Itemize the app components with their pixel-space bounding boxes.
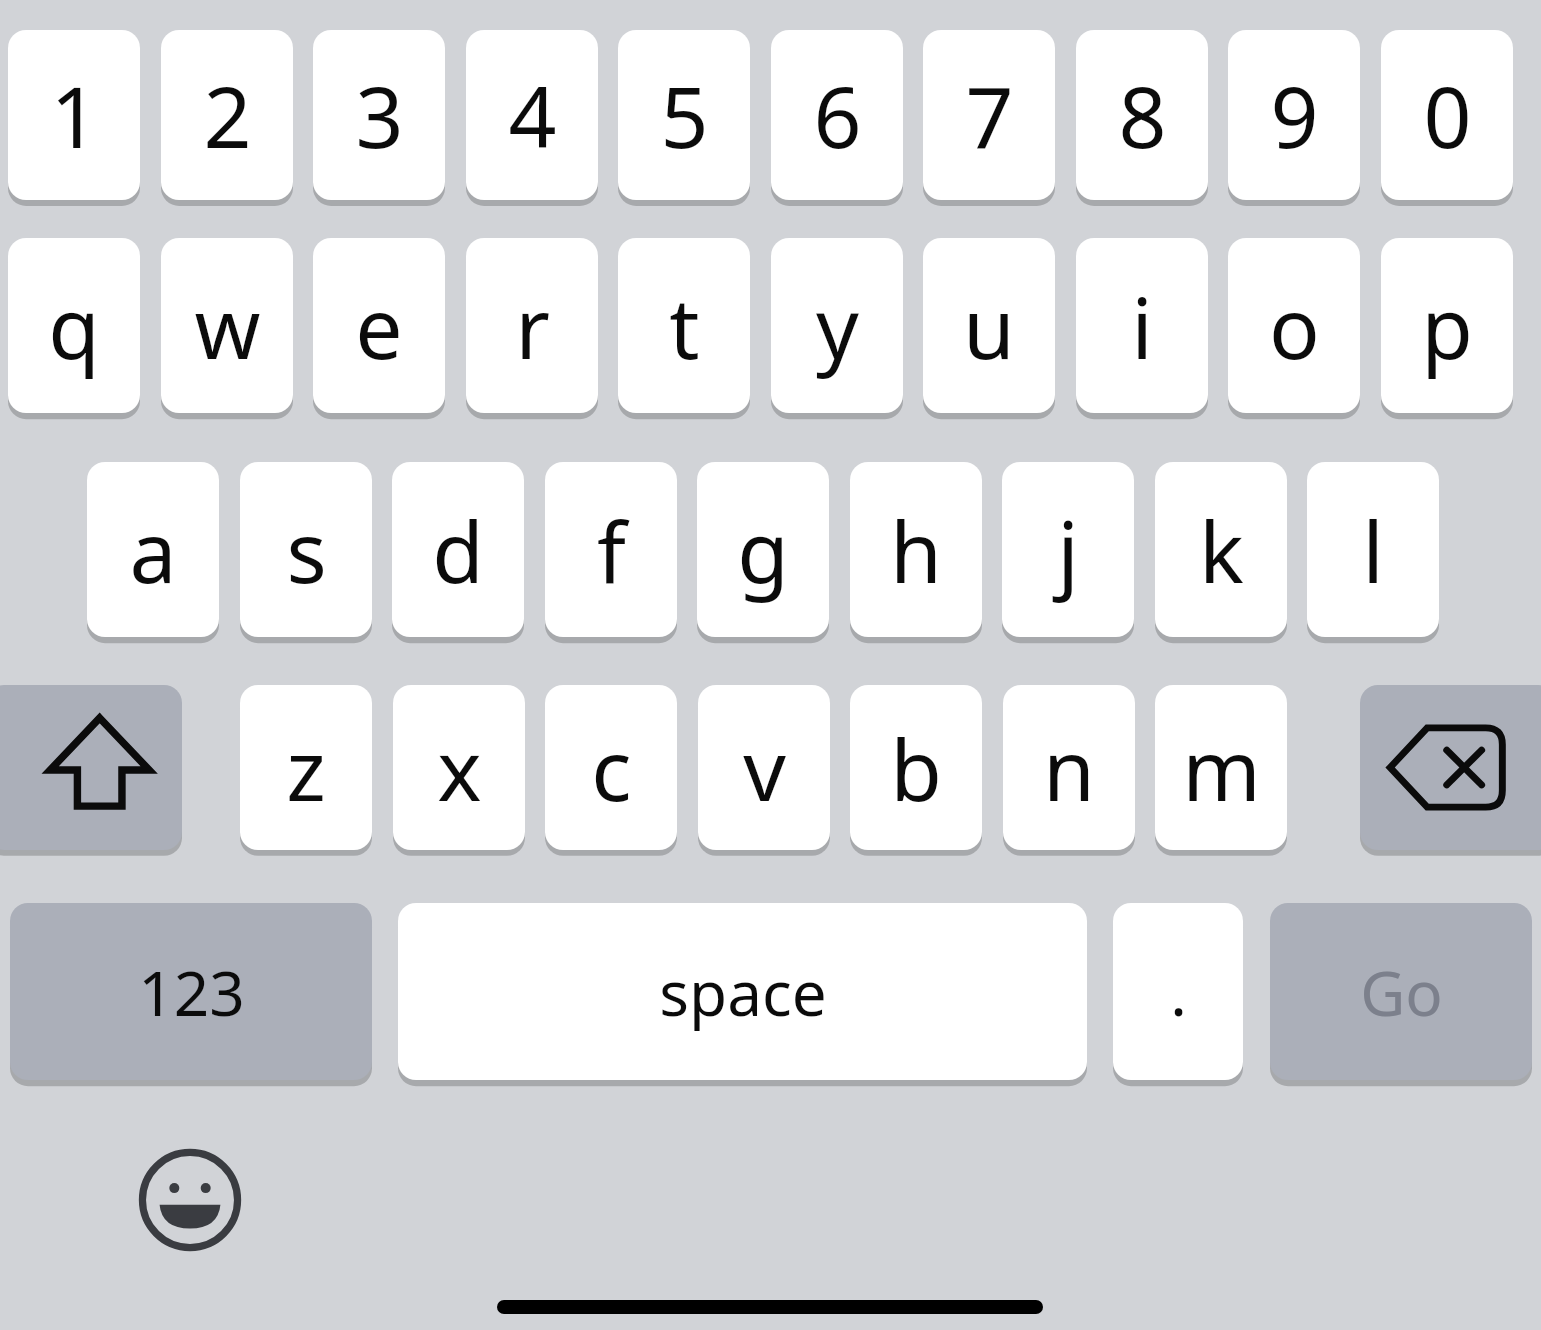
staticText: m bbox=[1182, 711, 1261, 825]
staticText: u bbox=[963, 269, 1015, 383]
button[interactable]: 4 bbox=[466, 30, 598, 200]
staticText: p bbox=[1421, 269, 1473, 383]
button[interactable]: . bbox=[1113, 903, 1243, 1080]
staticText: t bbox=[669, 269, 700, 383]
button[interactable]: 6 bbox=[771, 30, 903, 200]
button[interactable]: Go bbox=[1270, 903, 1532, 1080]
button[interactable]: p bbox=[1381, 238, 1513, 413]
button[interactable]: Emoji keyboard bbox=[132, 1142, 248, 1258]
button[interactable]: y bbox=[771, 238, 903, 413]
staticText: o bbox=[1269, 269, 1320, 383]
button[interactable]: a bbox=[87, 462, 219, 637]
staticText: y bbox=[816, 269, 859, 383]
button[interactable]: 1 bbox=[8, 30, 140, 200]
button[interactable]: q bbox=[8, 238, 140, 413]
button[interactable]: u bbox=[923, 238, 1055, 413]
staticText: . bbox=[1170, 950, 1187, 1034]
staticText: d bbox=[432, 493, 484, 607]
button[interactable]: w bbox=[161, 238, 293, 413]
button[interactable]: h bbox=[850, 462, 982, 637]
button[interactable]: z bbox=[240, 685, 372, 850]
button[interactable]: m bbox=[1155, 685, 1287, 850]
staticText: 2 bbox=[203, 58, 252, 172]
staticText: b bbox=[890, 711, 942, 825]
button[interactable]: s bbox=[240, 462, 372, 637]
staticText: h bbox=[890, 493, 942, 607]
button[interactable]: f bbox=[545, 462, 677, 637]
staticText: 6 bbox=[813, 58, 862, 172]
button[interactable]: Backspace bbox=[1360, 685, 1541, 850]
button[interactable]: 3 bbox=[313, 30, 445, 200]
button[interactable]: 123 bbox=[10, 903, 372, 1080]
button[interactable]: j bbox=[1002, 462, 1134, 637]
button[interactable]: 7 bbox=[923, 30, 1055, 200]
button[interactable]: l bbox=[1307, 462, 1439, 637]
button[interactable]: 8 bbox=[1076, 30, 1208, 200]
staticText: v bbox=[743, 711, 786, 825]
button[interactable]: 5 bbox=[618, 30, 750, 200]
staticText: 7 bbox=[965, 58, 1014, 172]
button[interactable]: d bbox=[392, 462, 524, 637]
button[interactable]: 0 bbox=[1381, 30, 1513, 200]
button[interactable]: 9 bbox=[1228, 30, 1360, 200]
staticText: g bbox=[737, 493, 789, 607]
staticText: j bbox=[1057, 493, 1079, 607]
staticText: 4 bbox=[508, 58, 557, 172]
staticText: 123 bbox=[138, 950, 245, 1034]
staticText: 8 bbox=[1118, 58, 1167, 172]
button[interactable]: o bbox=[1228, 238, 1360, 413]
button[interactable]: c bbox=[545, 685, 677, 850]
staticText: 5 bbox=[660, 58, 709, 172]
staticText: w bbox=[194, 269, 261, 383]
button[interactable]: space bbox=[398, 903, 1087, 1080]
staticText: space bbox=[659, 950, 827, 1034]
button[interactable]: e bbox=[313, 238, 445, 413]
staticText: c bbox=[591, 711, 632, 825]
button[interactable]: r bbox=[466, 238, 598, 413]
button[interactable]: i bbox=[1076, 238, 1208, 413]
staticText: 3 bbox=[355, 58, 404, 172]
staticText: s bbox=[286, 493, 327, 607]
staticText: n bbox=[1043, 711, 1095, 825]
staticText: k bbox=[1199, 493, 1244, 607]
button[interactable]: t bbox=[618, 238, 750, 413]
button[interactable]: g bbox=[697, 462, 829, 637]
button[interactable]: b bbox=[850, 685, 982, 850]
button[interactable]: k bbox=[1155, 462, 1287, 637]
staticText: a bbox=[129, 493, 177, 607]
staticText: 0 bbox=[1423, 58, 1472, 172]
staticText: 9 bbox=[1270, 58, 1319, 172]
button[interactable]: n bbox=[1003, 685, 1135, 850]
staticText: Go bbox=[1360, 950, 1443, 1034]
staticText: 1 bbox=[50, 58, 99, 172]
staticText: f bbox=[597, 493, 626, 607]
staticText: e bbox=[355, 269, 403, 383]
staticText: q bbox=[48, 269, 100, 383]
button[interactable]: Shift bbox=[0, 685, 182, 850]
button[interactable]: v bbox=[698, 685, 830, 850]
staticText: z bbox=[286, 711, 326, 825]
staticText: i bbox=[1131, 269, 1153, 383]
staticText: l bbox=[1362, 493, 1384, 607]
button[interactable]: x bbox=[393, 685, 525, 850]
button[interactable]: 2 bbox=[161, 30, 293, 200]
staticText: x bbox=[437, 711, 482, 825]
staticText: r bbox=[515, 269, 550, 383]
